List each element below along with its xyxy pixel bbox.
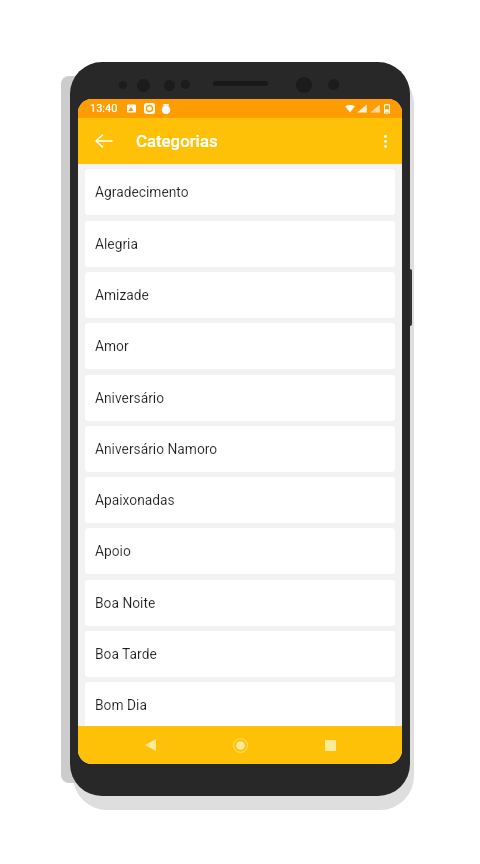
staticText: Alegria xyxy=(95,236,138,252)
staticText: 13:40 xyxy=(90,102,118,115)
button[interactable]: Aniversário xyxy=(85,375,395,421)
button[interactable]: Alegria xyxy=(85,221,395,267)
staticText: Apaixonadas xyxy=(95,492,175,508)
button[interactable]: Boa Tarde xyxy=(85,631,395,677)
button[interactable]: Recents xyxy=(309,726,351,764)
staticText: Aniversário xyxy=(95,390,165,406)
button[interactable]: Apaixonadas xyxy=(85,477,395,523)
button[interactable]: Aniversário Namoro xyxy=(85,426,395,472)
button[interactable]: Agradecimento xyxy=(85,169,395,215)
staticText: Boa Tarde xyxy=(95,646,157,662)
button[interactable]: Apoio xyxy=(85,528,395,574)
staticText: Boa Noite xyxy=(95,595,156,611)
staticText: Apoio xyxy=(95,543,131,559)
button[interactable]: Back xyxy=(129,726,171,764)
button[interactable]: Home xyxy=(219,726,261,764)
staticText: Agradecimento xyxy=(95,184,189,200)
staticText: Amor xyxy=(95,338,129,354)
staticText: Bom Dia xyxy=(95,697,147,713)
button[interactable]: Boa Noite xyxy=(85,580,395,626)
button[interactable]: More options xyxy=(368,118,402,164)
staticText: Amizade xyxy=(95,287,149,303)
staticText: Aniversário Namoro xyxy=(95,441,218,457)
button[interactable]: Back xyxy=(84,121,124,161)
button[interactable]: Amizade xyxy=(85,272,395,318)
button[interactable]: Bom Dia xyxy=(85,682,395,726)
button[interactable]: Amor xyxy=(85,323,395,369)
staticText: Categorias xyxy=(136,131,218,151)
